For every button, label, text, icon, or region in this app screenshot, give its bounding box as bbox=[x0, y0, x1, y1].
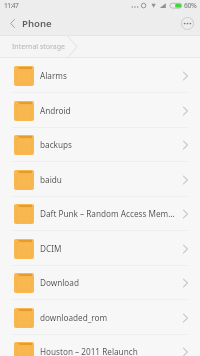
staticText: backups bbox=[40, 139, 179, 150]
staticText: 60% bbox=[184, 1, 197, 10]
button[interactable]: DCIM bbox=[0, 231, 200, 266]
staticText: Download bbox=[40, 277, 179, 288]
staticText: Phone bbox=[22, 17, 52, 30]
staticText: 11:47 bbox=[4, 1, 19, 10]
button[interactable]: Houston – 2011 Relaunch bbox=[0, 334, 200, 356]
button[interactable]: Back bbox=[1, 12, 23, 34]
staticText: baidu bbox=[40, 174, 179, 185]
staticText: DCIM bbox=[40, 243, 179, 254]
button[interactable]: Download bbox=[0, 265, 200, 300]
staticText: downloaded_rom bbox=[40, 312, 179, 323]
button[interactable]: Alarms bbox=[0, 58, 200, 93]
button[interactable]: Android bbox=[0, 93, 200, 128]
staticText: Houston – 2011 Relaunch bbox=[40, 346, 179, 356]
button[interactable]: Daft Punk – Random Access Mem… bbox=[0, 196, 200, 231]
button[interactable]: More options bbox=[178, 14, 196, 32]
staticText: Daft Punk – Random Access Mem… bbox=[40, 208, 179, 219]
button[interactable]: downloaded_rom bbox=[0, 300, 200, 335]
button[interactable]: backups bbox=[0, 127, 200, 162]
button[interactable]: Internal storage bbox=[0, 38, 73, 56]
staticText: Android bbox=[40, 105, 179, 116]
staticText: Alarms bbox=[40, 70, 179, 81]
button[interactable]: baidu bbox=[0, 162, 200, 197]
staticText: Internal storage bbox=[12, 42, 65, 52]
